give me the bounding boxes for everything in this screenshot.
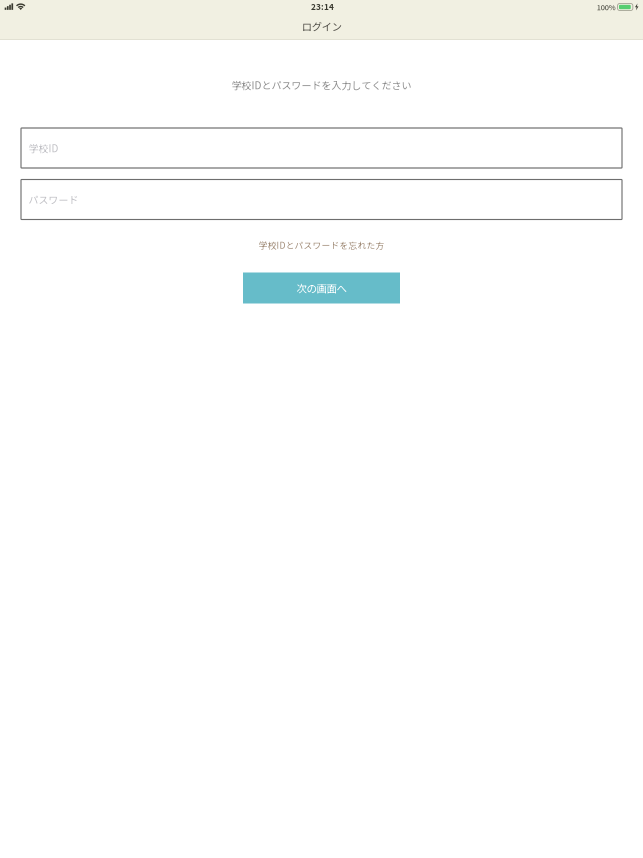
button[interactable]: 次の画面へ	[243, 272, 400, 303]
staticText: 学校IDとパスワードを入力してください	[231, 78, 411, 92]
staticText: パスワード	[28, 192, 78, 207]
staticText: 学校ID	[28, 141, 58, 155]
staticText: 100%	[597, 1, 616, 12]
staticText: 次の画面へ	[296, 280, 346, 296]
staticText: 学校IDとパスワードを忘れた方	[258, 239, 384, 251]
staticText: 23:14	[311, 0, 334, 12]
button[interactable]: パスワード	[21, 179, 622, 219]
button[interactable]: 学校ID	[21, 128, 622, 168]
staticText: ログイン	[302, 19, 342, 34]
button[interactable]: 学校IDとパスワードを忘れた方	[252, 238, 390, 252]
